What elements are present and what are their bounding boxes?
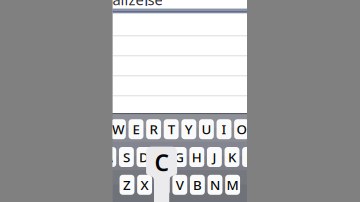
- button[interactable]: Y: [181, 119, 196, 139]
- button[interactable]: X: [137, 175, 152, 195]
- staticText: W: [112, 120, 125, 138]
- staticText: I: [221, 120, 226, 138]
- button[interactable]: I: [217, 119, 231, 139]
- staticText: X: [141, 176, 149, 194]
- staticText: F: [158, 148, 165, 166]
- staticText: S: [123, 148, 130, 166]
- staticText: L: [246, 148, 253, 166]
- staticText: Z: [123, 176, 131, 194]
- button[interactable]: D: [137, 147, 151, 167]
- button[interactable]: H: [189, 147, 204, 167]
- staticText: E: [132, 120, 139, 138]
- staticText: V: [176, 176, 184, 194]
- staticText: C: [155, 147, 169, 177]
- staticText: K: [228, 148, 236, 166]
- button[interactable]: T: [164, 119, 179, 139]
- button[interactable]: N: [208, 175, 222, 195]
- button[interactable]: S: [119, 147, 134, 167]
- staticText: J: [212, 148, 216, 166]
- button[interactable]: Z: [119, 175, 134, 195]
- button[interactable]: V: [172, 175, 187, 195]
- button[interactable]: J: [207, 147, 222, 167]
- staticText: B: [193, 176, 202, 194]
- button[interactable]: O: [234, 119, 249, 139]
- staticText: Y: [185, 120, 193, 138]
- staticText: H: [192, 148, 202, 166]
- staticText: T: [168, 120, 175, 138]
- button[interactable]: A: [101, 147, 116, 167]
- staticText: D: [139, 148, 149, 166]
- staticText: R: [150, 120, 158, 138]
- staticText: G: [174, 148, 184, 166]
- staticText: O: [237, 120, 247, 138]
- button[interactable]: F: [154, 147, 169, 167]
- staticText: M: [227, 176, 239, 194]
- button[interactable]: K: [225, 147, 239, 167]
- button[interactable]: G: [172, 147, 187, 167]
- button[interactable]: E: [129, 119, 143, 139]
- staticText: ssalize se: [98, 0, 162, 9]
- button[interactable]: U: [199, 119, 214, 139]
- button[interactable]: B: [190, 175, 205, 195]
- staticText: N: [210, 176, 220, 194]
- button[interactable]: L: [242, 147, 257, 167]
- staticText: A: [104, 148, 113, 166]
- button[interactable]: R: [146, 119, 161, 139]
- button[interactable]: W: [111, 119, 126, 139]
- button[interactable]: M: [225, 175, 240, 195]
- staticText: U: [201, 120, 211, 138]
- button[interactable]: C: [155, 175, 170, 195]
